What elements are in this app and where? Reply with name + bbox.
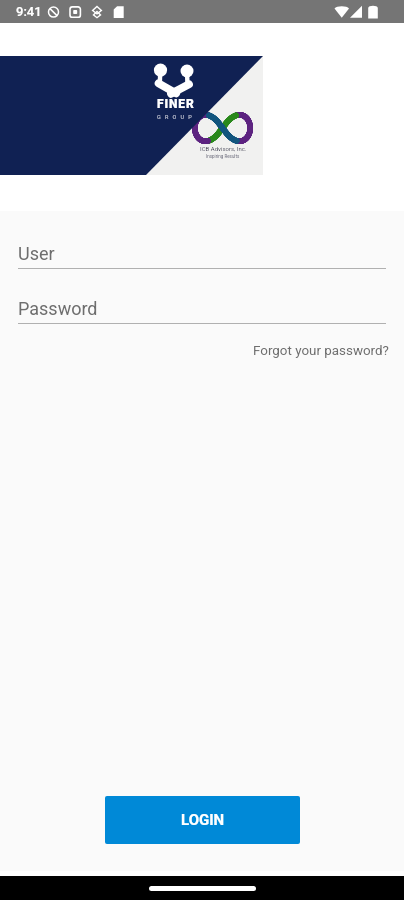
staticText: G R O U P: [157, 114, 194, 120]
button[interactable]: Password: [0, 298, 404, 324]
staticText: Inspiring Results: [206, 154, 240, 159]
button[interactable]: LOGIN: [105, 796, 300, 844]
staticText: FINER: [157, 97, 195, 111]
staticText: 9:41: [16, 4, 42, 19]
button[interactable]: Forgot your password?: [238, 341, 404, 361]
staticText: LOGIN: [181, 811, 225, 829]
staticText: Password: [18, 298, 98, 319]
staticText: User: [18, 243, 55, 264]
button[interactable]: User: [0, 243, 404, 269]
staticText: ICB Advisors, Inc.: [200, 145, 247, 152]
staticText: Forgot your password?: [253, 343, 389, 359]
